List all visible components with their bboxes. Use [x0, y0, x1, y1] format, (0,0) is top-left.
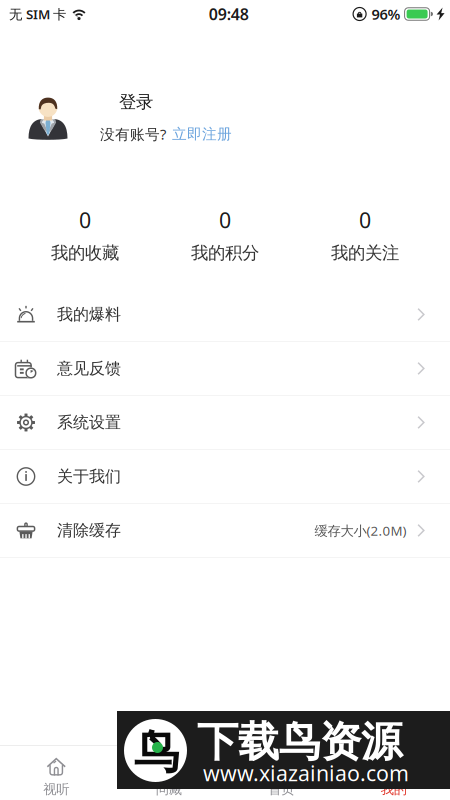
staticText: 09:48 — [209, 3, 249, 25]
staticText: 缓存大小(2.0M) — [315, 522, 407, 539]
button[interactable]: 意见反馈 — [0, 342, 450, 396]
staticText: 96% — [372, 4, 401, 24]
staticText: 我的积分 — [191, 242, 259, 264]
button[interactable]: 登录 — [119, 91, 153, 113]
button[interactable]: 问藏 — [112, 746, 225, 800]
staticText: 没有账号? — [100, 124, 166, 144]
button[interactable]: 我的爆料 — [0, 288, 450, 342]
button[interactable]: 清除缓存 — [0, 504, 450, 558]
button[interactable]: 系统设置 — [0, 396, 450, 450]
staticText: 我的收藏 — [51, 242, 119, 264]
button[interactable]: 首页 — [225, 746, 337, 800]
staticText: 系统设置 — [57, 413, 121, 432]
staticText: 0 — [219, 206, 231, 234]
staticText: www.xiazainiao.com — [203, 759, 409, 787]
staticText: 意见反馈 — [57, 359, 121, 378]
staticText: 0 — [359, 206, 371, 234]
staticText: 我的 — [381, 781, 407, 797]
staticText: 清除缓存 — [57, 521, 121, 540]
button[interactable]: 视听 — [0, 746, 112, 800]
button[interactable]: 0 — [295, 207, 435, 263]
staticText: 关于我们 — [57, 467, 121, 486]
staticText: 立即注册 — [172, 125, 232, 143]
button[interactable]: 立即注册 — [166, 125, 232, 143]
staticText: 鸟 — [134, 725, 179, 780]
staticText: 0 — [79, 206, 91, 234]
staticText: 我的爆料 — [57, 305, 121, 324]
staticText: 我的关注 — [331, 242, 399, 264]
staticText: 下载鸟资源 — [197, 717, 402, 767]
button[interactable]: 我的 — [337, 746, 450, 800]
staticText: 问藏 — [156, 781, 182, 797]
staticText: 登录 — [119, 91, 153, 113]
button[interactable]: 关于我们 — [0, 450, 450, 504]
button[interactable]: 0 — [15, 207, 155, 263]
staticText: 无 SIM 卡 — [9, 5, 66, 23]
staticText: 视听 — [43, 781, 69, 797]
staticText: 首页 — [268, 781, 294, 797]
button[interactable]: 0 — [155, 207, 295, 263]
